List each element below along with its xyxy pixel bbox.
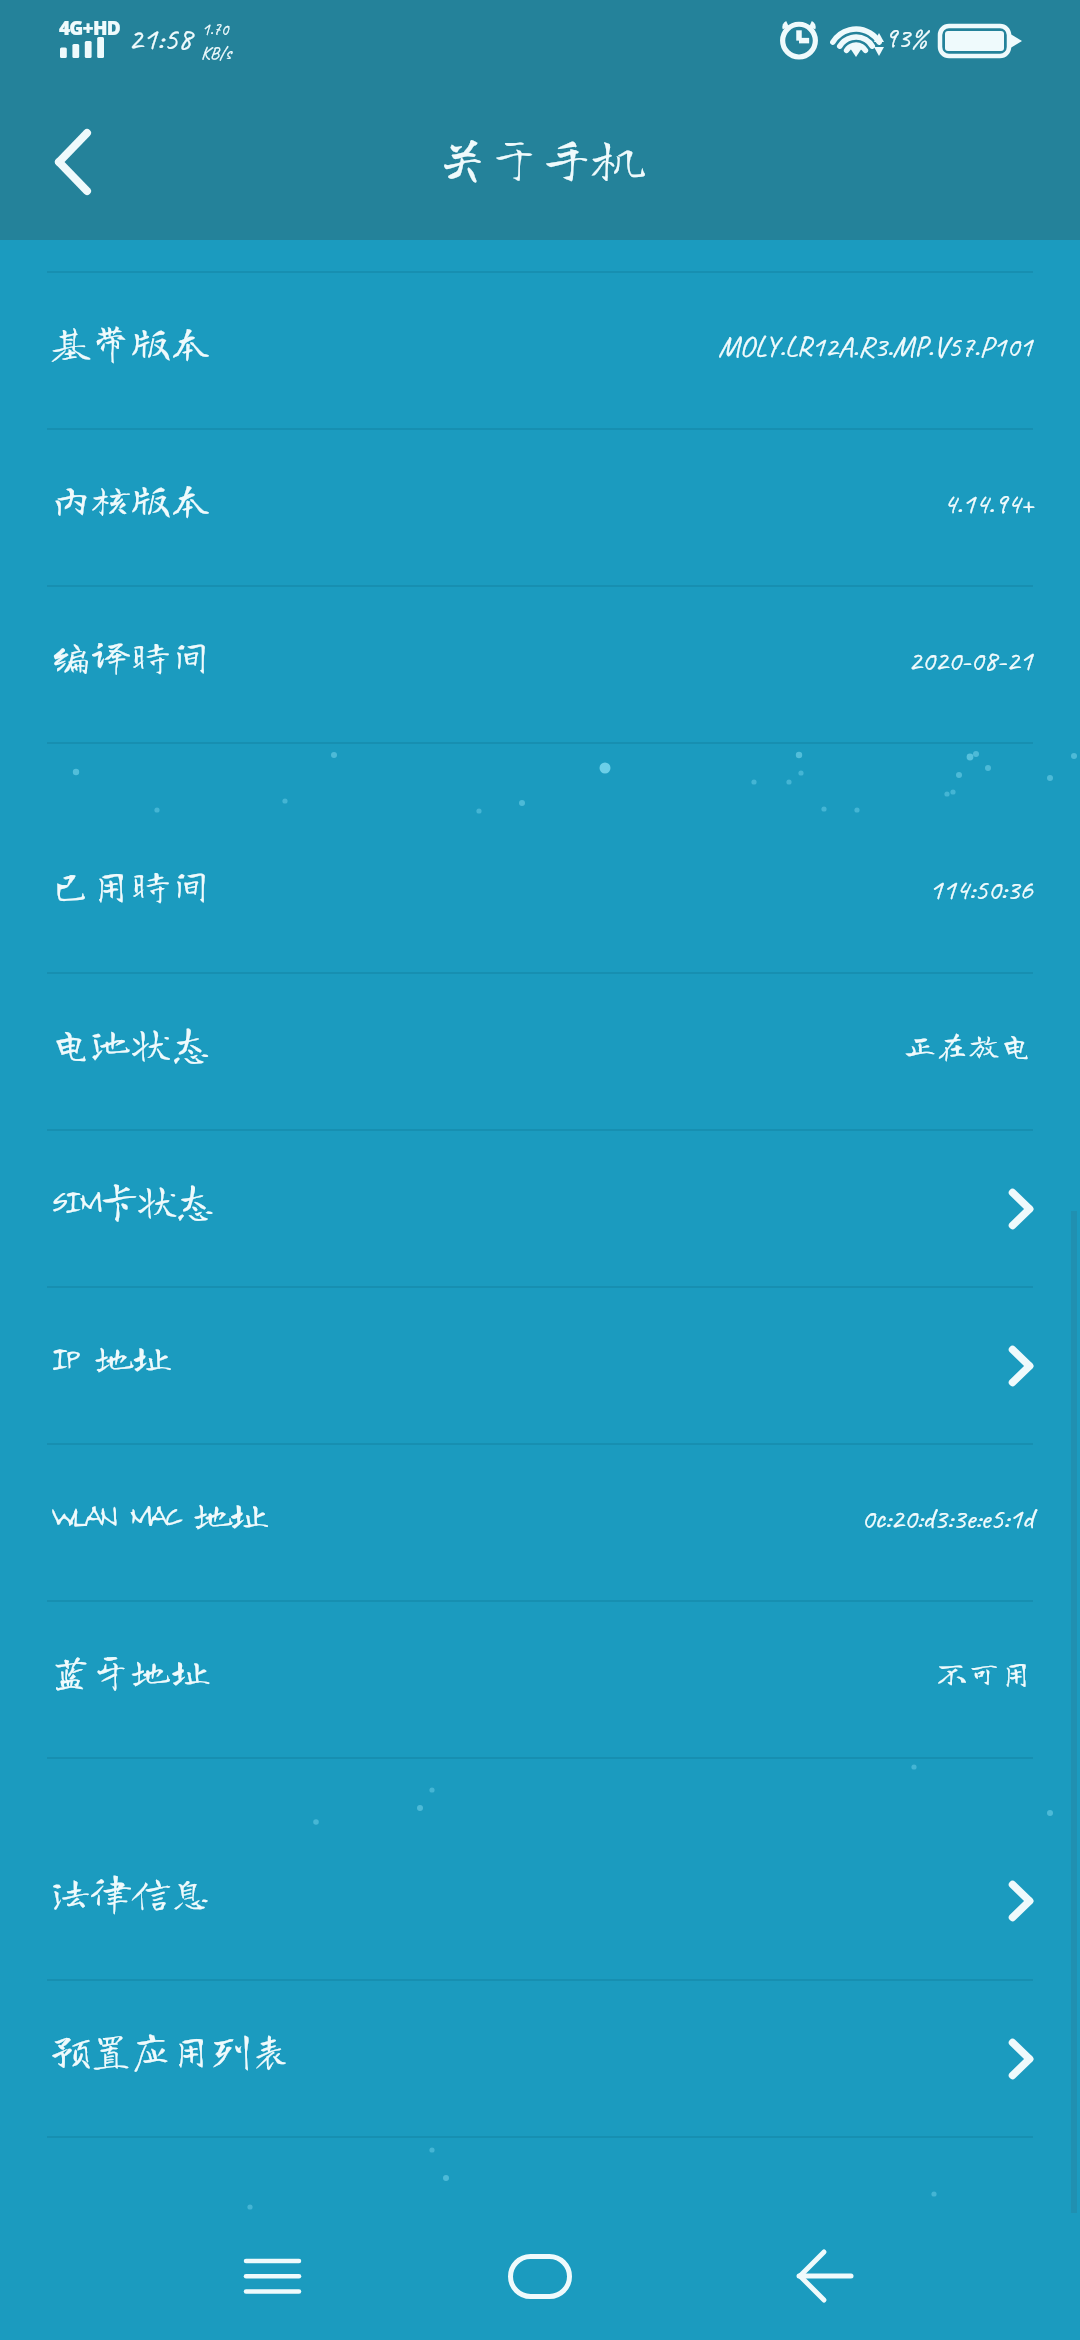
staticText: 4G+HD	[59, 15, 120, 41]
staticText: MOLY.LR12A.R3.MP.V57.P101	[718, 327, 1033, 365]
staticText: 不可用	[936, 1657, 1033, 1689]
button[interactable]: Recent apps	[210, 2215, 334, 2339]
button[interactable]: 电池状态	[0, 974, 1080, 1129]
button[interactable]: 基带版本	[0, 273, 1080, 428]
staticText: 正在放电	[904, 1029, 1033, 1061]
button[interactable]: 蓝牙地址	[0, 1602, 1080, 1757]
button[interactable]: IP 地址	[0, 1288, 1080, 1443]
staticText: 内核版本	[51, 479, 211, 519]
button[interactable]: 预置应用列表	[0, 1981, 1080, 2136]
staticText: 114:50:36	[929, 870, 1033, 908]
staticText: IP 地址	[51, 1337, 171, 1377]
staticText: 0c:20:d3:3e:e5:1d	[861, 1499, 1033, 1537]
button[interactable]: 编译时间	[0, 587, 1080, 742]
staticText: 法律信息	[51, 1872, 211, 1912]
staticText: 电池状态	[51, 1023, 211, 1063]
button[interactable]: WLAN MAC 地址	[0, 1445, 1080, 1600]
button[interactable]: 内核版本	[0, 430, 1080, 585]
button[interactable]: 已用时间	[0, 744, 1080, 972]
staticText: 2020-08-21	[908, 641, 1033, 679]
button[interactable]: Home	[478, 2214, 602, 2338]
staticText: 预置应用列表	[51, 2030, 291, 2070]
staticText: 蓝牙地址	[51, 1651, 211, 1691]
button[interactable]: Back	[762, 2214, 886, 2338]
staticText: 4.14.94+	[943, 484, 1033, 522]
staticText: KB/s	[201, 42, 232, 65]
staticText: SIM卡状态	[51, 1180, 214, 1220]
button[interactable]: 法律信息	[0, 1759, 1080, 1979]
staticText: 关于手机	[436, 131, 645, 183]
staticText: 93%	[884, 19, 928, 56]
staticText: 基带版本	[51, 322, 211, 362]
staticText: 1.70	[202, 19, 229, 40]
staticText: WLAN MAC 地址	[51, 1494, 266, 1534]
staticText: 已用时间	[51, 865, 211, 905]
staticText: 编译时间	[51, 636, 211, 676]
button[interactable]: SIM卡状态	[0, 1131, 1080, 1286]
button[interactable]: Back	[28, 117, 118, 207]
staticText: 21:58	[128, 18, 192, 58]
